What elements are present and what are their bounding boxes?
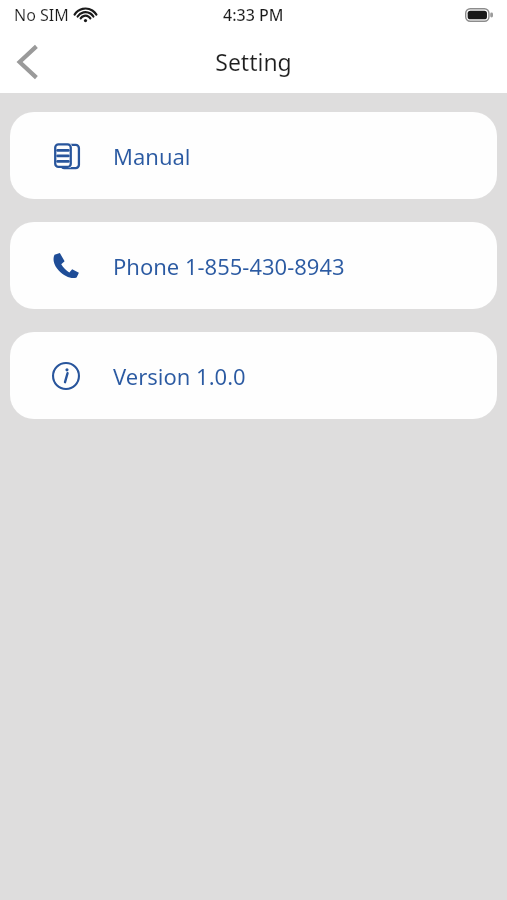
button[interactable]: Manual (10, 112, 497, 199)
staticText: Manual (113, 141, 191, 171)
button[interactable]: Phone 1-855-430-8943 (10, 222, 497, 309)
staticText: Phone 1-855-430-8943 (113, 251, 345, 281)
staticText: Version 1.0.0 (113, 361, 246, 391)
button[interactable]: Back (0, 34, 56, 90)
staticText: No SIM (14, 4, 69, 26)
staticText: Setting (215, 46, 292, 77)
staticText: 4:33 PM (223, 4, 284, 26)
button[interactable]: Version 1.0.0 (10, 332, 497, 419)
